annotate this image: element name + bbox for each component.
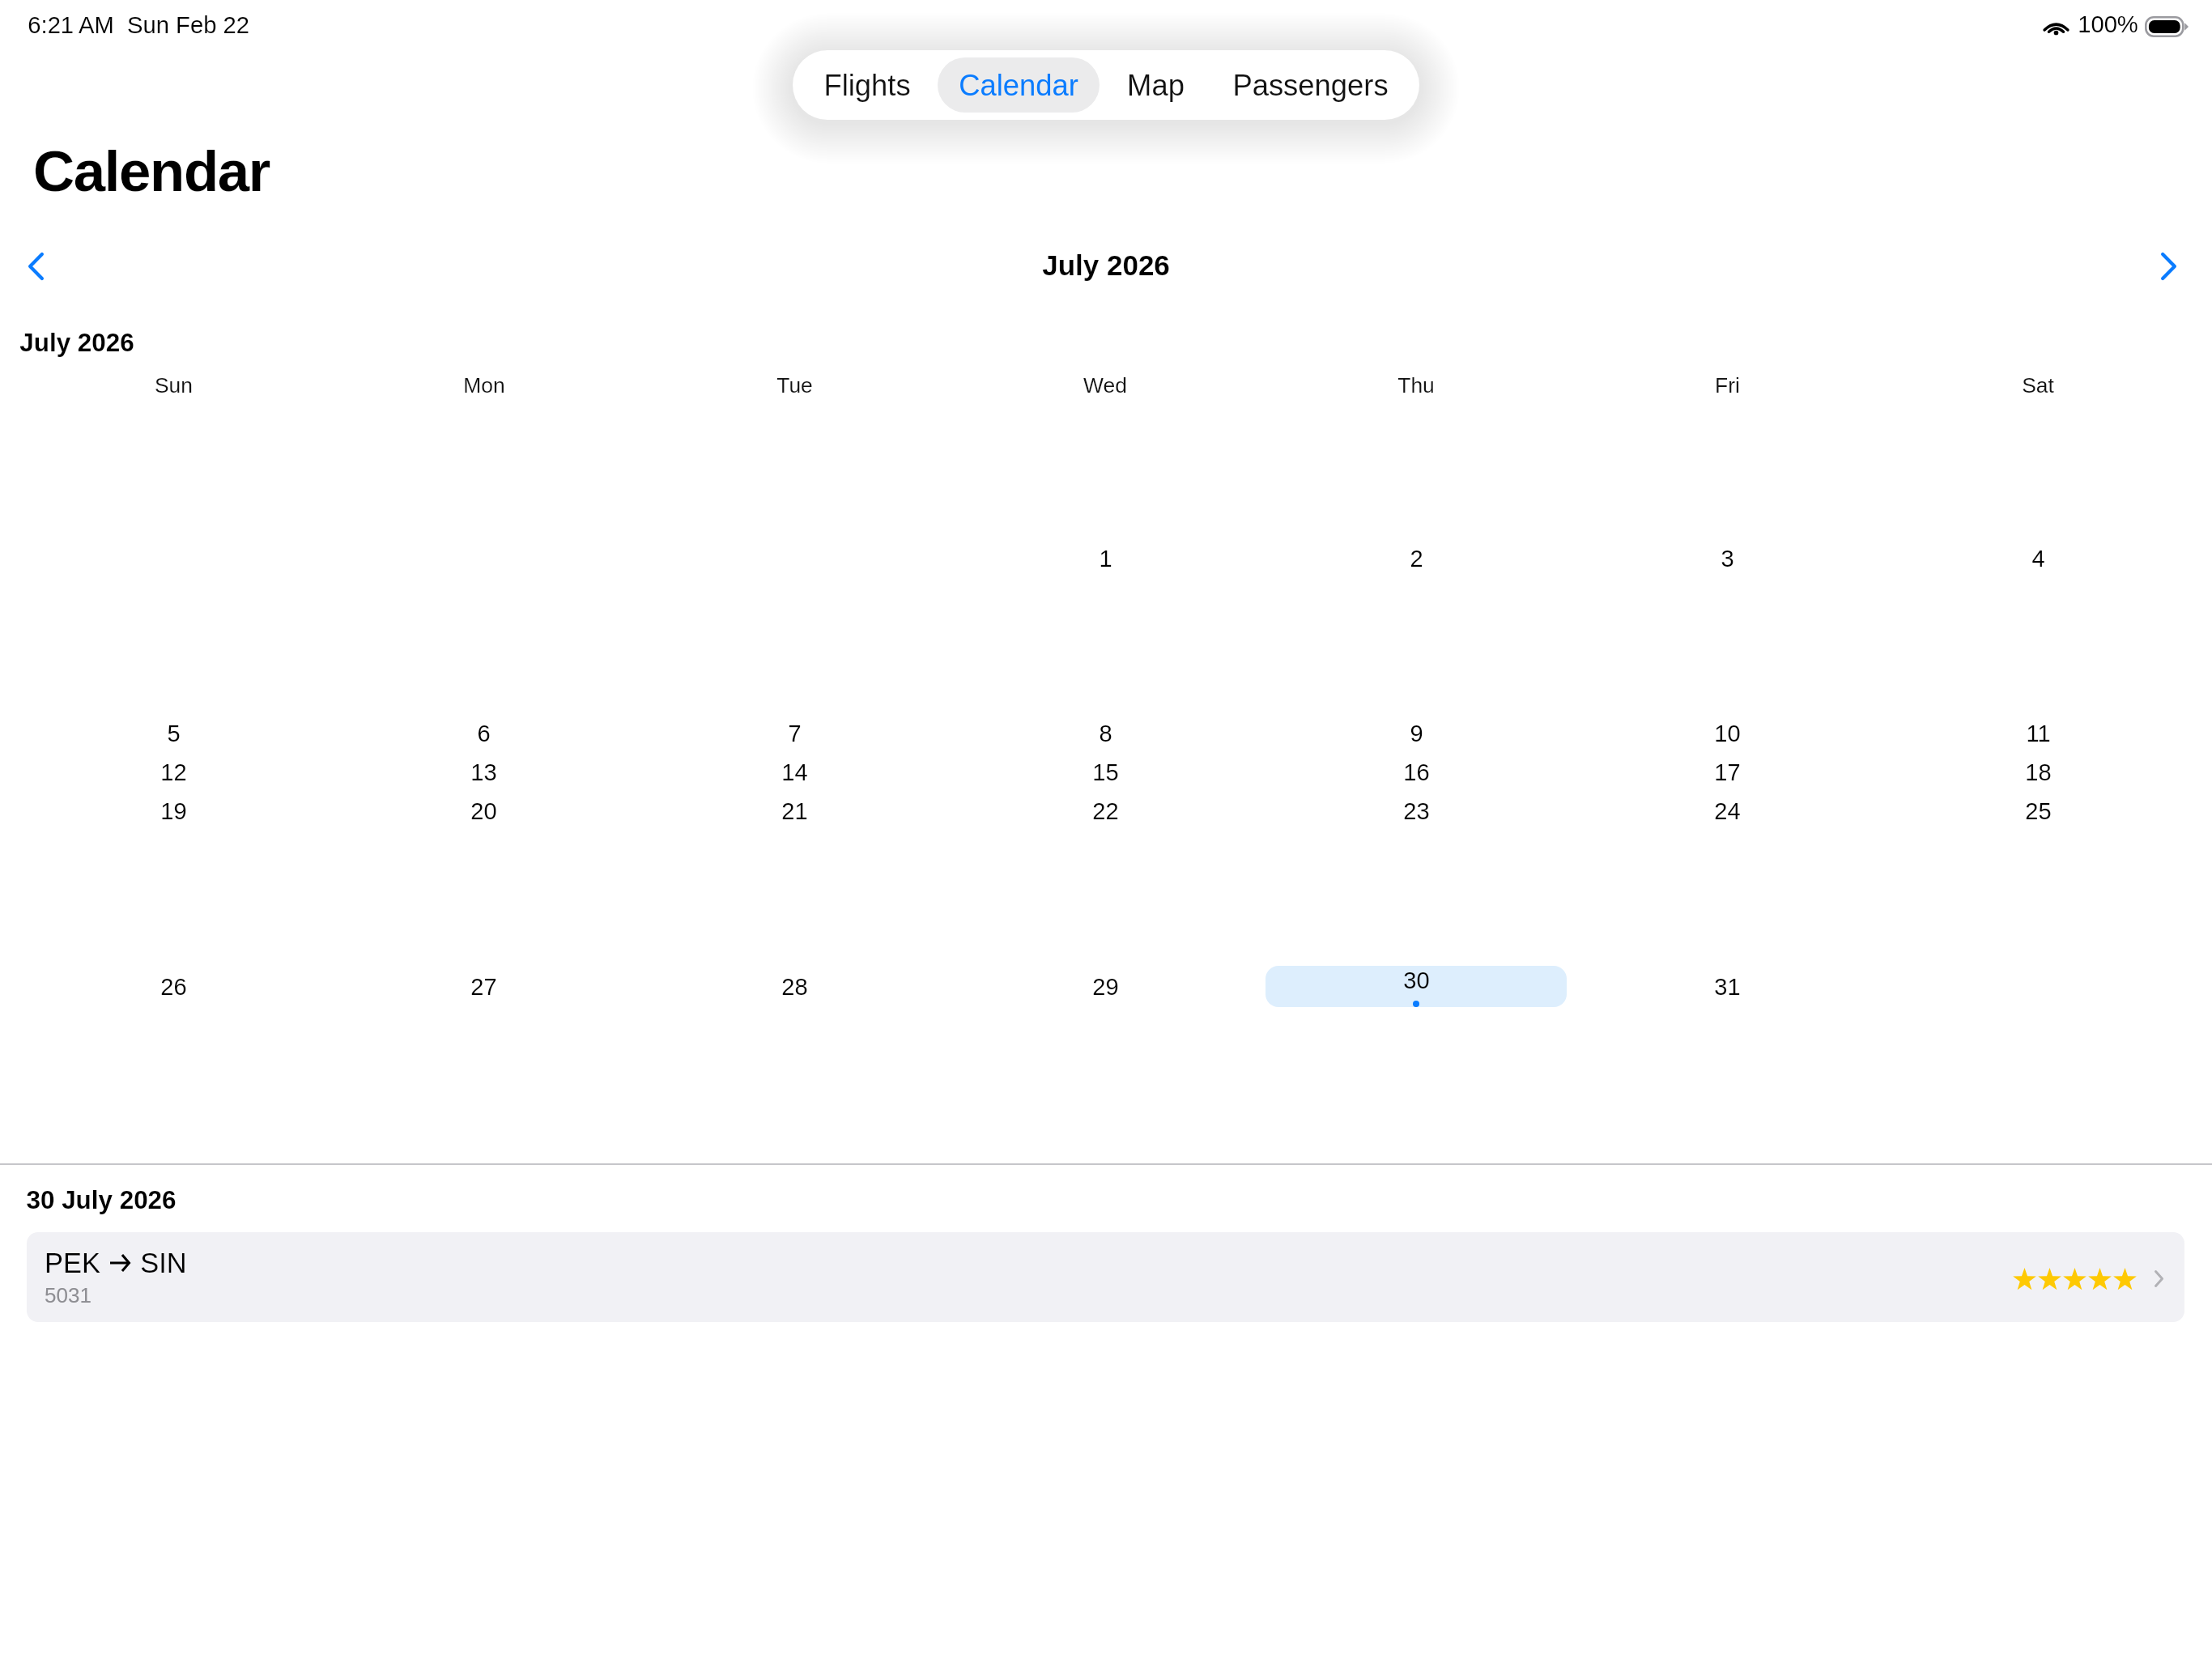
staticText: PEK bbox=[45, 1248, 100, 1278]
button[interactable]: 31 bbox=[1576, 966, 1878, 1007]
staticText: 3 bbox=[1721, 546, 1734, 572]
staticText: Sun bbox=[155, 373, 193, 397]
button[interactable]: 3 bbox=[1576, 538, 1878, 579]
button[interactable]: 6 bbox=[334, 712, 634, 754]
button[interactable]: 5 bbox=[23, 712, 324, 754]
staticText: 10 bbox=[1714, 721, 1741, 746]
staticText: Map bbox=[1127, 69, 1185, 102]
button[interactable]: Calendar bbox=[938, 57, 1100, 113]
button[interactable]: 19 bbox=[23, 790, 324, 831]
button[interactable]: Next month bbox=[2141, 239, 2196, 294]
button[interactable]: 10 bbox=[1576, 712, 1878, 754]
staticText: Calendar bbox=[959, 69, 1078, 102]
staticText: 13 bbox=[470, 759, 497, 785]
button[interactable]: 26 bbox=[23, 966, 324, 1007]
staticText: Flights bbox=[823, 69, 911, 102]
button[interactable]: 16 bbox=[1266, 751, 1567, 793]
staticText: Sat bbox=[2022, 373, 2054, 397]
staticText: 21 bbox=[781, 798, 808, 824]
button[interactable]: PEK bbox=[27, 1232, 2184, 1322]
staticText: 100% bbox=[2078, 11, 2138, 38]
staticText: Fri bbox=[1715, 373, 1740, 397]
button[interactable]: 13 bbox=[334, 751, 634, 793]
staticText: 6 bbox=[477, 721, 491, 746]
staticText: 28 bbox=[781, 974, 808, 1000]
button[interactable]: 27 bbox=[334, 966, 634, 1007]
button[interactable]: 11 bbox=[1887, 712, 2189, 754]
button[interactable]: 9 bbox=[1266, 712, 1567, 754]
staticText: 4 bbox=[2031, 546, 2045, 572]
button[interactable]: 4 bbox=[1887, 538, 2189, 579]
staticText: 18 bbox=[2025, 759, 2052, 785]
button[interactable]: 18 bbox=[1887, 751, 2189, 793]
button[interactable]: 21 bbox=[644, 790, 945, 831]
button[interactable]: Map bbox=[1106, 57, 1206, 113]
staticText: 27 bbox=[470, 974, 497, 1000]
button[interactable]: 29 bbox=[955, 966, 1256, 1007]
button[interactable]: 17 bbox=[1576, 751, 1878, 793]
staticText: Mon bbox=[463, 373, 505, 397]
staticText: 1 bbox=[1099, 546, 1112, 572]
button[interactable]: 25 bbox=[1887, 790, 2189, 831]
staticText: 30 July 2026 bbox=[26, 1186, 177, 1214]
button[interactable]: Passengers bbox=[1211, 57, 1410, 113]
staticText: 20 bbox=[470, 798, 497, 824]
staticText: 26 bbox=[160, 974, 187, 1000]
staticText: 5031 bbox=[45, 1283, 91, 1307]
button[interactable]: 2 bbox=[1266, 538, 1567, 579]
staticText: 6:21 AM bbox=[28, 12, 114, 39]
button[interactable]: 20 bbox=[334, 790, 634, 831]
button[interactable]: 12 bbox=[23, 751, 324, 793]
button[interactable]: 1 bbox=[955, 538, 1256, 579]
staticText: SIN bbox=[140, 1248, 187, 1278]
button[interactable]: 7 bbox=[644, 712, 945, 754]
button[interactable]: 22 bbox=[955, 790, 1256, 831]
staticText: 17 bbox=[1714, 759, 1741, 785]
staticText: Calendar bbox=[33, 139, 270, 203]
staticText: 8 bbox=[1099, 721, 1112, 746]
button[interactable]: Flights bbox=[802, 57, 932, 113]
staticText: Tue bbox=[776, 373, 813, 397]
button[interactable]: 15 bbox=[955, 751, 1256, 793]
staticText: 29 bbox=[1092, 974, 1119, 1000]
button[interactable]: Previous month bbox=[8, 239, 63, 294]
staticText: 7 bbox=[788, 721, 802, 746]
staticText: July 2026 bbox=[1042, 249, 1170, 281]
button[interactable]: 24 bbox=[1576, 790, 1878, 831]
staticText: 23 bbox=[1403, 798, 1430, 824]
staticText: July 2026 bbox=[19, 329, 134, 357]
staticText: 25 bbox=[2025, 798, 2052, 824]
staticText: 30 bbox=[1403, 967, 1430, 993]
staticText: Thu bbox=[1397, 373, 1435, 397]
button[interactable]: 8 bbox=[955, 712, 1256, 754]
staticText: 31 bbox=[1714, 974, 1741, 1000]
staticText: Wed bbox=[1083, 373, 1127, 397]
button[interactable]: 30 bbox=[1266, 966, 1567, 1007]
staticText: 5 bbox=[167, 721, 181, 746]
button[interactable]: 23 bbox=[1266, 790, 1567, 831]
staticText: 16 bbox=[1403, 759, 1430, 785]
staticText: 11 bbox=[2026, 721, 2051, 746]
staticText: 14 bbox=[781, 759, 808, 785]
staticText: 2 bbox=[1410, 546, 1423, 572]
button[interactable]: 14 bbox=[644, 751, 945, 793]
staticText: Passengers bbox=[1232, 69, 1389, 102]
button[interactable]: 28 bbox=[644, 966, 945, 1007]
staticText: Sun Feb 22 bbox=[127, 12, 249, 39]
staticText: 9 bbox=[1410, 721, 1423, 746]
staticText: 19 bbox=[160, 798, 187, 824]
staticText: 22 bbox=[1092, 798, 1119, 824]
staticText: 12 bbox=[160, 759, 187, 785]
staticText: 15 bbox=[1092, 759, 1119, 785]
staticText: 24 bbox=[1714, 798, 1741, 824]
